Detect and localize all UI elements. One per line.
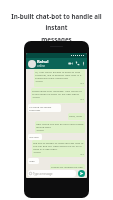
button[interactable]: Thanks for looking the ride with — [51, 165, 84, 169]
staticText: Okay, Sure! — [69, 114, 83, 117]
button[interactable]: Video call — [68, 61, 73, 66]
staticText: 10:4 — [80, 82, 84, 85]
button[interactable]: Type a message — [29, 170, 75, 177]
button[interactable]: Okay, Sure! — [69, 114, 84, 119]
button[interactable]: See him at perfect at hope spot get hold… — [33, 141, 84, 156]
staticText: Yeah — [29, 159, 35, 162]
button[interactable]: Send — [78, 170, 85, 177]
button[interactable]: Yeah — [29, 159, 38, 163]
staticText: No thing my fellow controller — [29, 105, 60, 111]
staticText: Thanks for looking the ride with — [51, 165, 84, 169]
button[interactable]: Please leave your message. I will contac… — [32, 89, 84, 102]
staticText: Type a message — [33, 172, 53, 176]
staticText: In-built chat-bot to handle all instant … — [1, 12, 112, 44]
staticText: Hi, I am Vinod. Excited to meet all long… — [35, 70, 84, 82]
button[interactable]: Yes sure — [29, 135, 41, 139]
staticText: 10:4 — [80, 153, 84, 156]
button[interactable]: More options — [82, 61, 85, 66]
staticText: online — [37, 64, 46, 68]
button[interactable]: Hey! Would you like an hour later maybe … — [36, 122, 84, 132]
staticText: Hey! Would you like an hour later maybe … — [36, 122, 84, 131]
button[interactable]: Hi, I am Vinod. Excited to meet all long… — [35, 70, 84, 86]
button[interactable]: No thing my fellow controller — [29, 105, 60, 111]
staticText: 10:4 — [80, 98, 84, 101]
staticText: See him at perfect at hope spot get hold… — [33, 141, 84, 153]
staticText: Rahul — [37, 59, 49, 64]
staticText: Please leave your message. I will contac… — [32, 89, 84, 98]
staticText: Yes sure — [29, 135, 39, 138]
button[interactable]: Call — [75, 61, 80, 66]
